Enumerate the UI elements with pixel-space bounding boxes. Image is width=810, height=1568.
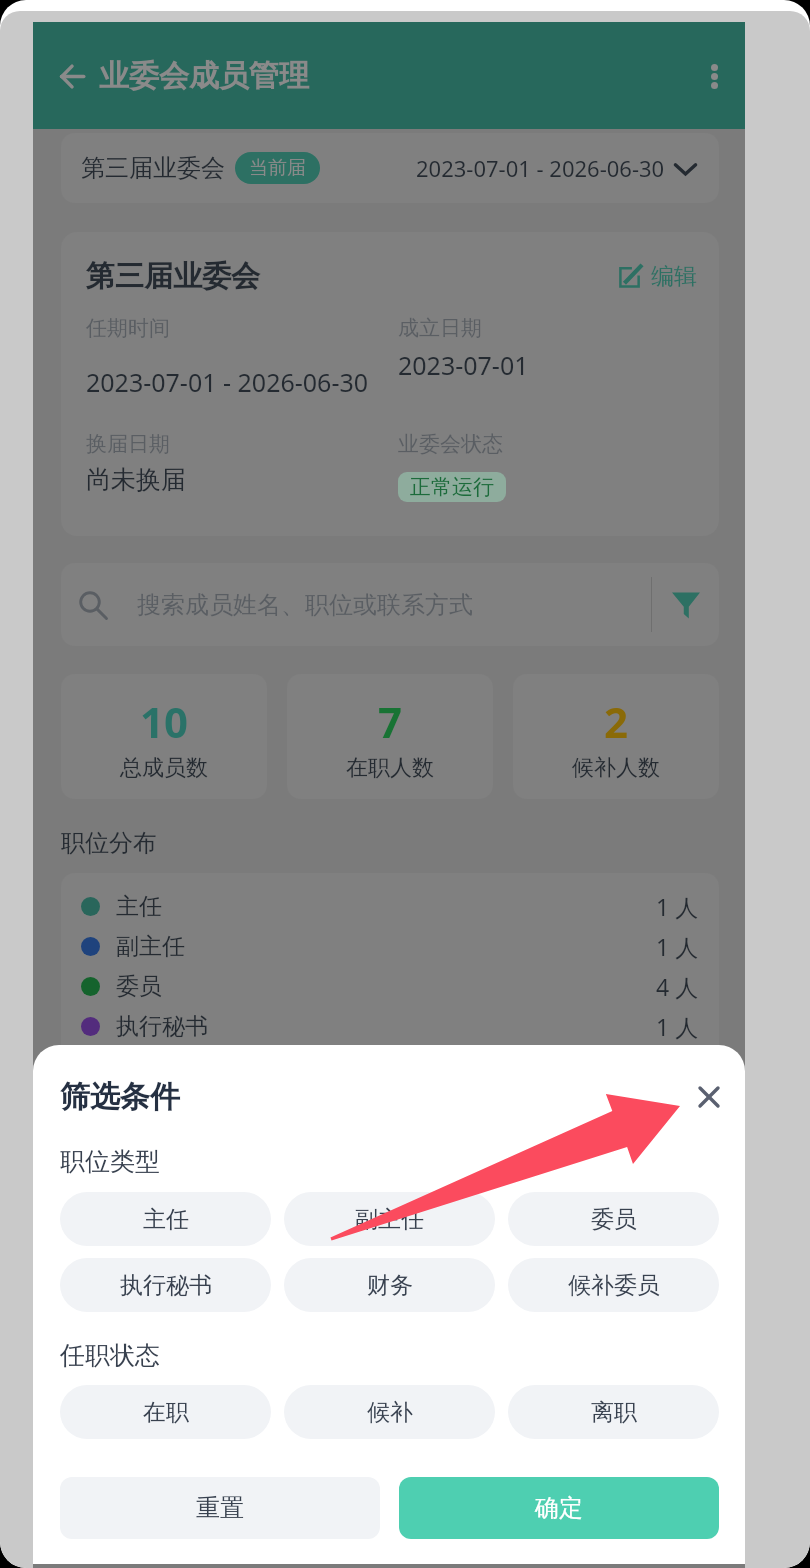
- button[interactable]: 执行秘书: [81, 1006, 699, 1046]
- button[interactable]: 2: [513, 674, 719, 799]
- button[interactable]: 编辑: [618, 262, 697, 291]
- button[interactable]: 重置: [60, 1477, 380, 1539]
- staticText: 委员: [591, 1205, 637, 1234]
- button[interactable]: Back: [45, 49, 99, 103]
- staticText: 1 人: [656, 931, 699, 962]
- staticText: 10: [140, 693, 189, 750]
- button[interactable]: 副主任: [284, 1192, 495, 1246]
- staticText: 1 人: [656, 1011, 699, 1042]
- staticText: 职位类型: [60, 1146, 160, 1177]
- button[interactable]: 副主任: [81, 926, 699, 966]
- button[interactable]: Filter: [652, 563, 719, 646]
- staticText: 筛选条件: [60, 1078, 180, 1116]
- staticText: 2023-07-01 - 2026-06-30: [416, 153, 665, 183]
- button[interactable]: 委员: [508, 1192, 719, 1246]
- button[interactable]: 委员: [81, 966, 699, 1006]
- staticText: 候补委员: [568, 1271, 660, 1300]
- staticText: 搜索成员姓名、职位或联系方式: [137, 590, 473, 620]
- staticText: 2023-07-01: [398, 348, 529, 382]
- staticText: 职位分布: [61, 828, 157, 858]
- staticText: 副主任: [355, 1205, 424, 1234]
- button[interactable]: 搜索成员姓名、职位或联系方式: [61, 563, 651, 646]
- button[interactable]: 第三届业委会: [61, 133, 719, 203]
- staticText: 2023-07-01 - 2026-06-30: [86, 365, 369, 399]
- staticText: 4 人: [656, 971, 699, 1002]
- button[interactable]: 主任: [60, 1192, 271, 1246]
- button[interactable]: 财务: [284, 1258, 495, 1312]
- staticText: 尚未换届: [86, 464, 186, 495]
- staticText: 第三届业委会: [81, 153, 225, 183]
- button[interactable]: 财务: [81, 1046, 699, 1086]
- button[interactable]: 离职: [508, 1385, 719, 1439]
- staticText: 正常运行: [410, 474, 494, 500]
- staticText: 副主任: [116, 932, 185, 961]
- staticText: 主任: [143, 1205, 189, 1234]
- staticText: 在职: [143, 1398, 189, 1427]
- button[interactable]: Close: [686, 1074, 732, 1120]
- button[interactable]: 7: [287, 674, 493, 799]
- staticText: 候补人数: [572, 754, 660, 782]
- button[interactable]: 候补: [284, 1385, 495, 1439]
- staticText: 任职状态: [60, 1340, 160, 1371]
- staticText: 任期时间: [86, 315, 170, 341]
- staticText: 当前届: [249, 156, 306, 180]
- staticText: 业委会成员管理: [99, 57, 309, 95]
- button[interactable]: 在职: [60, 1385, 271, 1439]
- staticText: 执行秘书: [116, 1012, 208, 1041]
- staticText: 2: [604, 693, 629, 750]
- staticText: 业委会状态: [398, 431, 503, 457]
- button[interactable]: 候补委员: [508, 1258, 719, 1312]
- staticText: 委员: [116, 972, 162, 1001]
- staticText: 成立日期: [398, 315, 482, 341]
- staticText: 离职: [591, 1398, 637, 1427]
- staticText: 主任: [116, 892, 162, 921]
- staticText: 候补: [367, 1398, 413, 1427]
- staticText: 财务: [367, 1271, 413, 1300]
- staticText: 第三届业委会: [86, 258, 260, 295]
- staticText: 编辑: [651, 262, 697, 291]
- staticText: 在职人数: [346, 754, 434, 782]
- staticText: 7: [378, 693, 403, 750]
- staticText: 确定: [535, 1493, 583, 1523]
- button[interactable]: 10: [61, 674, 267, 799]
- button[interactable]: 执行秘书: [60, 1258, 271, 1312]
- button[interactable]: 主任: [81, 886, 699, 926]
- staticText: 重置: [196, 1493, 244, 1523]
- button[interactable]: More options: [687, 49, 741, 103]
- staticText: 1 人: [656, 891, 699, 922]
- button[interactable]: 确定: [399, 1477, 719, 1539]
- staticText: 执行秘书: [120, 1271, 212, 1300]
- staticText: 总成员数: [120, 754, 208, 782]
- staticText: 换届日期: [86, 431, 170, 457]
